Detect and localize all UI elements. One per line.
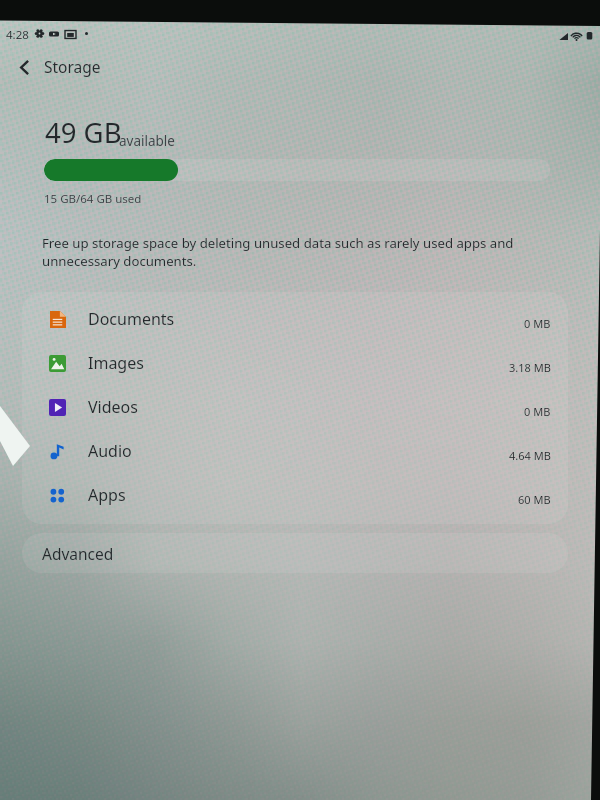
button[interactable]: Audio: [22, 429, 568, 473]
staticText: 4:28: [6, 27, 29, 43]
staticText: 49 GB: [45, 114, 122, 151]
staticText: 15 GB/64 GB used: [44, 191, 142, 207]
staticText: 60 MB: [518, 492, 551, 507]
staticText: Documents: [88, 308, 175, 330]
staticText: 4.64 MB: [509, 448, 551, 463]
staticText: Videos: [88, 396, 138, 418]
button[interactable]: Documents: [22, 297, 568, 341]
staticText: 0 MB: [524, 404, 551, 419]
staticText: available: [119, 132, 175, 150]
staticText: Advanced: [42, 543, 114, 564]
staticText: Storage: [44, 56, 101, 77]
staticText: Free up storage space by deleting unused…: [42, 234, 524, 270]
staticText: Images: [88, 352, 144, 374]
staticText: 3.18 MB: [509, 360, 551, 375]
staticText: 0 MB: [524, 316, 551, 331]
staticText: Apps: [88, 484, 126, 506]
staticText: Audio: [88, 440, 132, 462]
button[interactable]: Back: [4, 47, 44, 87]
button[interactable]: Videos: [22, 385, 568, 429]
button[interactable]: Apps: [22, 473, 568, 517]
button[interactable]: Advanced: [22, 533, 568, 573]
button[interactable]: Images: [22, 341, 568, 385]
